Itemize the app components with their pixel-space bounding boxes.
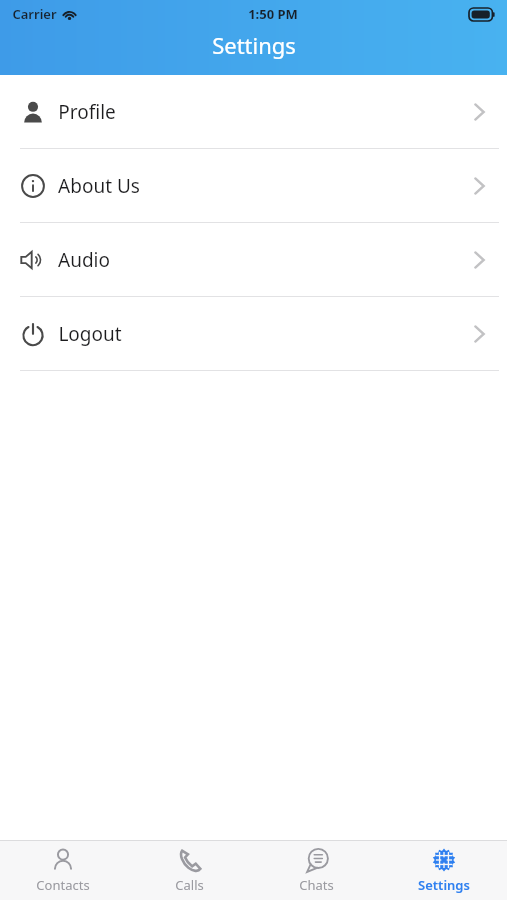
staticText: Settings bbox=[418, 876, 470, 894]
button[interactable]: Settings bbox=[380, 841, 507, 900]
staticText: 1:50 PM bbox=[248, 5, 298, 23]
button[interactable]: Profile bbox=[0, 75, 507, 148]
staticText: Audio bbox=[58, 247, 110, 273]
button[interactable]: Chats bbox=[253, 841, 380, 900]
staticText: Settings bbox=[212, 30, 296, 60]
button[interactable]: About Us bbox=[0, 149, 507, 222]
staticText: Contacts bbox=[36, 876, 90, 894]
staticText: Profile bbox=[58, 99, 116, 125]
button[interactable]: Audio bbox=[0, 223, 507, 296]
staticText: Logout bbox=[58, 321, 122, 347]
staticText: Calls bbox=[175, 876, 204, 894]
staticText: Carrier bbox=[12, 5, 57, 23]
staticText: Chats bbox=[299, 876, 334, 894]
button[interactable]: Logout bbox=[0, 297, 507, 370]
staticText: About Us bbox=[58, 173, 140, 199]
button[interactable]: Contacts bbox=[0, 841, 126, 900]
button[interactable]: Calls bbox=[126, 841, 253, 900]
